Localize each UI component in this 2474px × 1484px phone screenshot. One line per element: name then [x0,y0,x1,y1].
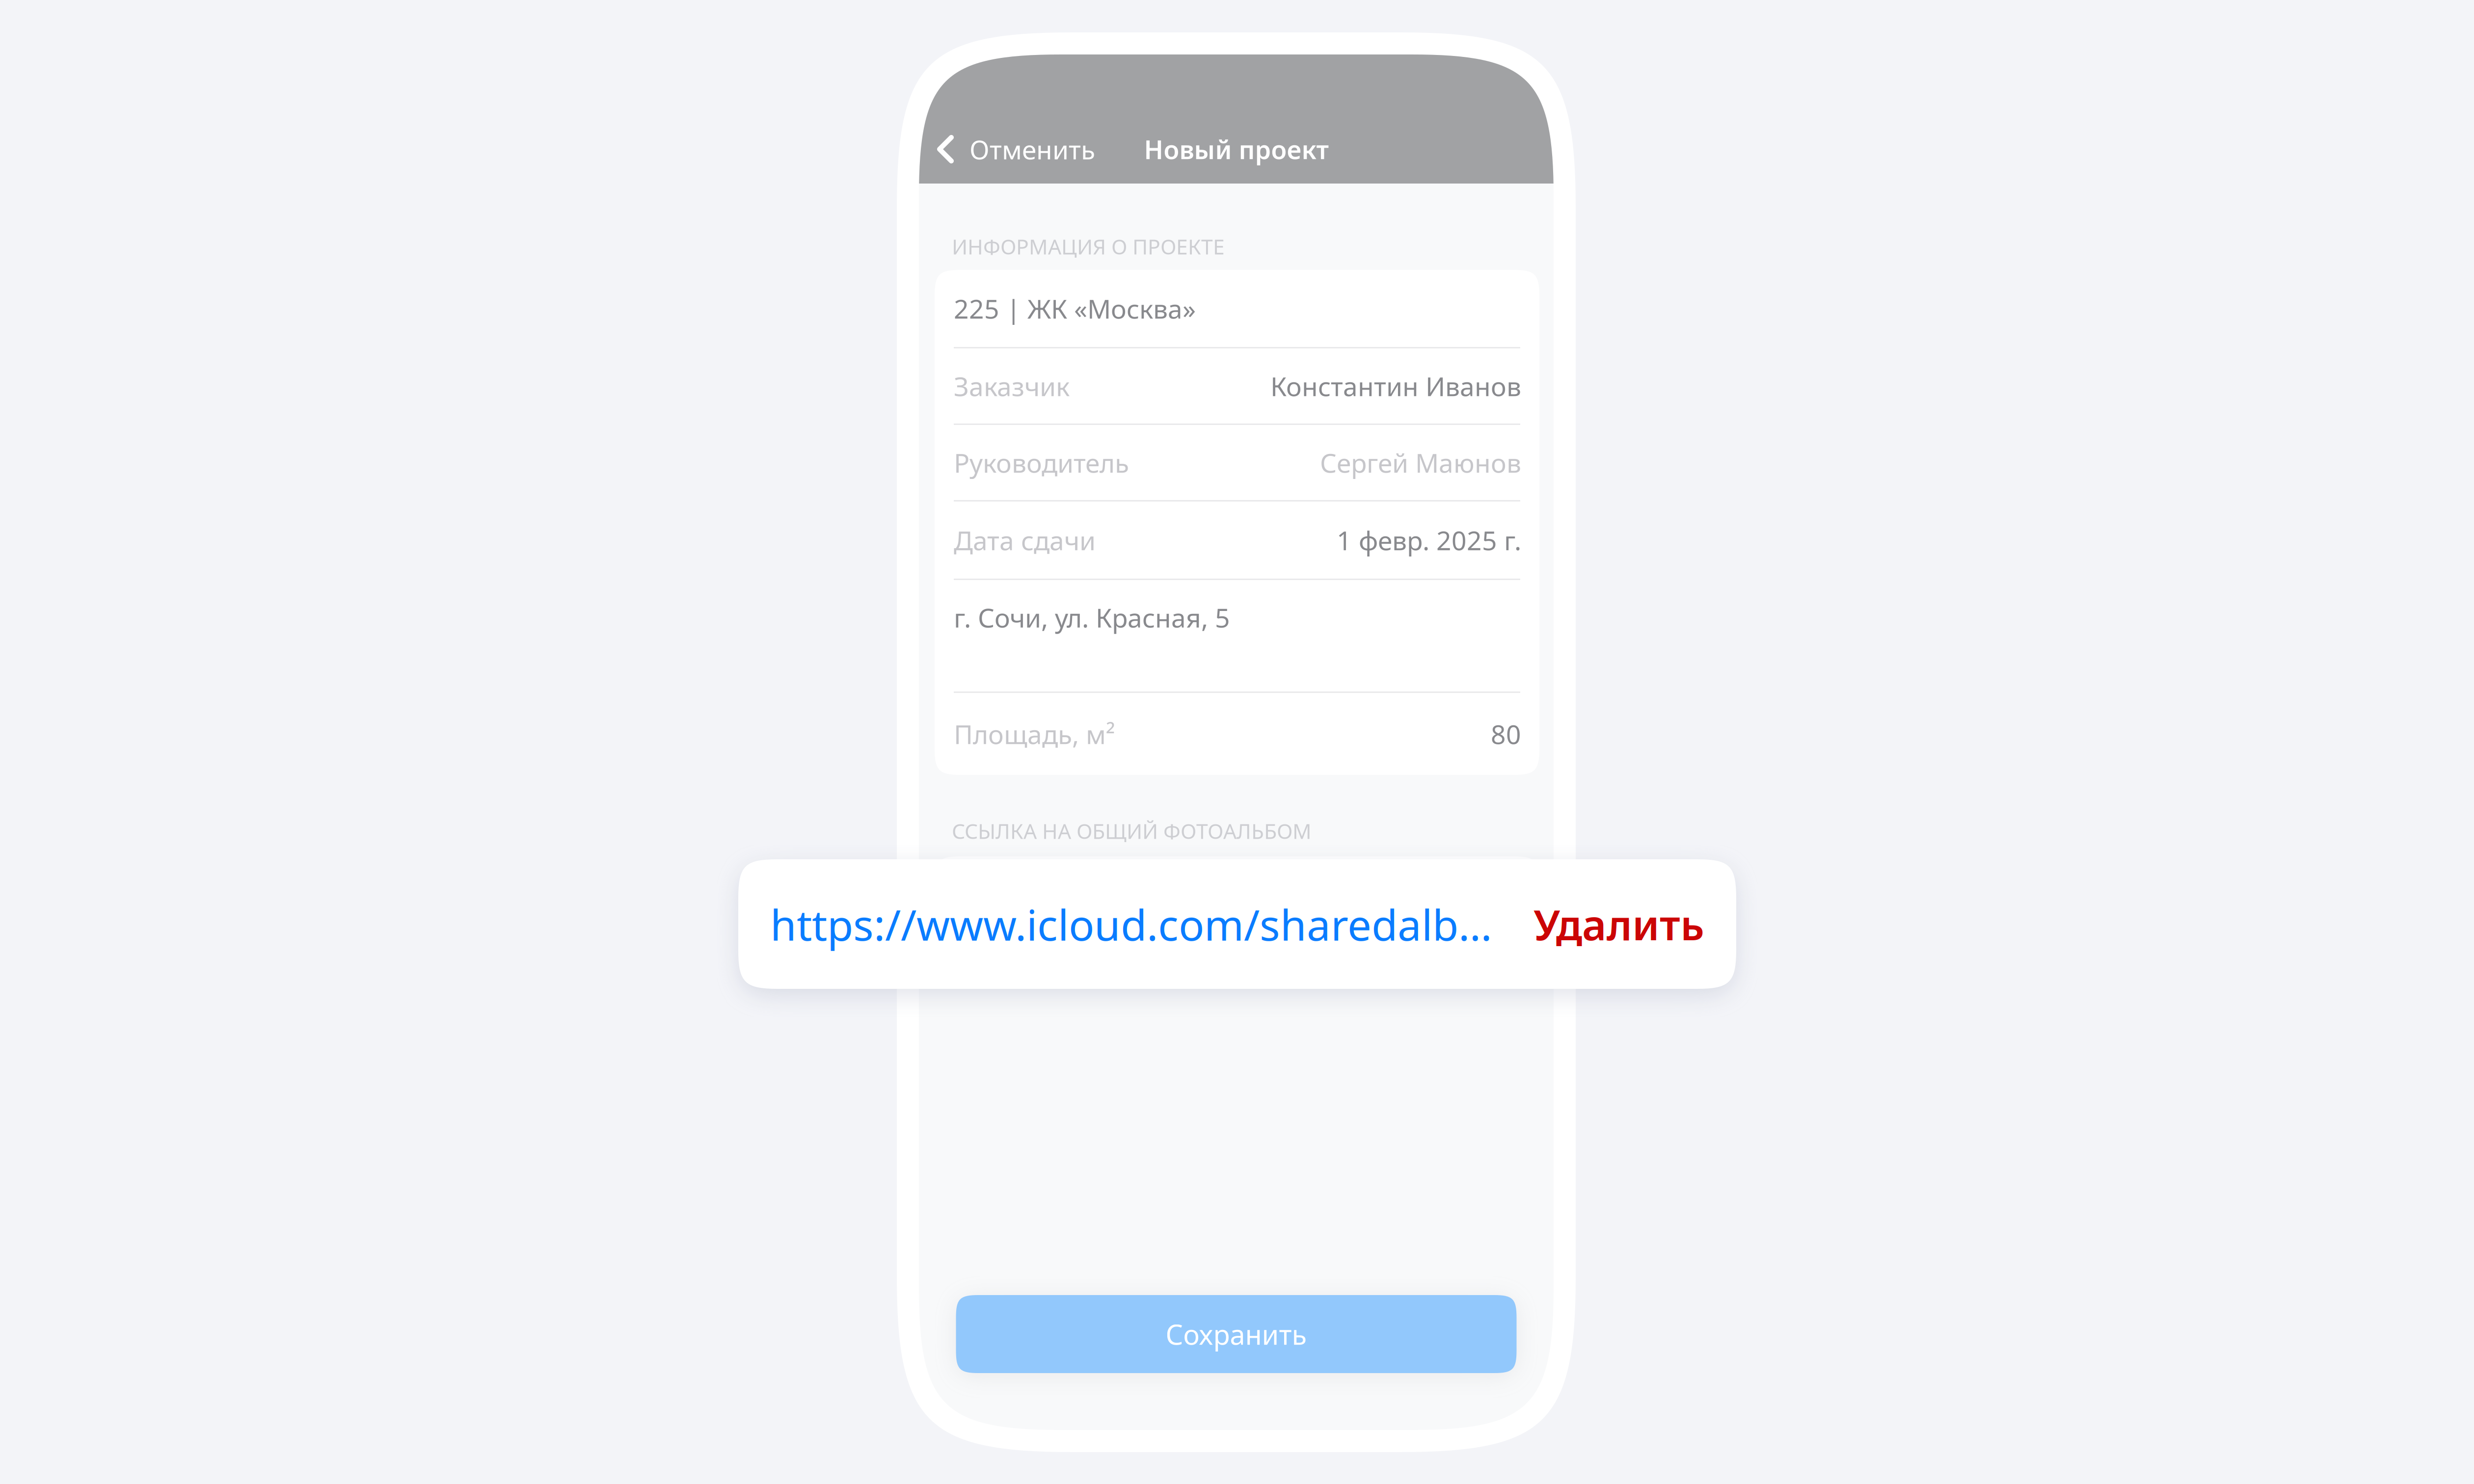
staticText: https://www.icloud.com/sharedalb… [770,896,1492,952]
staticText: Площадь, м² [954,717,1115,751]
button[interactable]: Заказчик [954,348,1520,424]
button[interactable]: Сохранить [956,1295,1517,1373]
staticText: Новый проект [1144,132,1329,166]
button[interactable]: Удалить [1533,859,1704,989]
button[interactable]: Дата сдачи [954,502,1520,579]
button[interactable]: Площадь, м² [954,693,1520,775]
staticText: Отменить [969,132,1095,167]
staticText: Сергей Маюнов [1320,445,1521,480]
button[interactable]: https://www.icloud.com/sharedalb… [770,859,1492,989]
button[interactable]: г. Сочи, ул. Красная, 5 [954,580,1520,691]
staticText: Удалить [1533,896,1704,952]
staticText: г. Сочи, ул. Красная, 5 [954,600,1230,635]
button[interactable]: Отменить [919,125,1130,174]
staticText: Константин Иванов [1270,369,1521,403]
staticText: Заказчик [954,369,1070,403]
staticText: Дата сдачи [954,523,1096,557]
staticText: https://www.icloud.com/sharedalb… [954,878,1399,913]
button[interactable]: https://www.icloud.com/sharedalb… [935,856,1539,935]
staticText: 80 [1491,717,1521,751]
staticText: Руководитель [954,445,1129,480]
staticText: 225 | ЖК «Москва» [954,291,1196,326]
staticText: Сохранить [1166,1316,1307,1352]
staticText: ИНФОРМАЦИЯ О ПРОЕКТЕ [952,232,1225,260]
staticText: 1 февр. 2025 г. [1337,523,1521,557]
staticText: ССЫЛКА НА ОБЩИЙ ФОТОАЛЬБОМ [952,817,1312,845]
button[interactable]: 225 | ЖК «Москва» [954,270,1520,347]
button[interactable]: Руководитель [954,425,1520,500]
